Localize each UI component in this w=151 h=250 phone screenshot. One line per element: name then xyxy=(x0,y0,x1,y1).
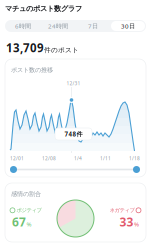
staticText: 1/4 xyxy=(74,155,82,161)
staticText: % xyxy=(26,220,31,228)
staticText: 1/11 xyxy=(100,155,111,161)
button[interactable]: 30日 xyxy=(111,21,145,31)
staticText: 感情の割合 xyxy=(11,190,41,198)
button[interactable]: 7日 xyxy=(76,21,110,31)
button[interactable]: 6時間 xyxy=(6,21,40,31)
staticText: マチュのポスト数グラフ xyxy=(5,4,82,13)
staticText: 1/18 xyxy=(129,155,140,161)
staticText: ポジティブ xyxy=(16,207,41,214)
staticText: 12/01 xyxy=(10,155,24,161)
button[interactable]: 24時間 xyxy=(41,21,75,31)
staticText: % xyxy=(134,220,139,228)
staticText: 33 xyxy=(119,214,133,230)
staticText: 30日 xyxy=(121,22,135,30)
staticText: ポスト数の推移 xyxy=(11,66,53,74)
staticText: 748件 xyxy=(64,130,82,138)
staticText: 13,709 xyxy=(6,40,44,56)
staticText: 7日 xyxy=(88,22,98,30)
staticText: 6時間 xyxy=(15,22,31,30)
staticText: ネガティブ xyxy=(109,207,134,214)
staticText: 件のポスト xyxy=(44,46,79,54)
staticText: 67 xyxy=(12,214,26,230)
staticText: 24時間 xyxy=(48,22,68,30)
staticText: 12/31 xyxy=(66,80,80,86)
staticText: 12/08 xyxy=(42,155,56,161)
